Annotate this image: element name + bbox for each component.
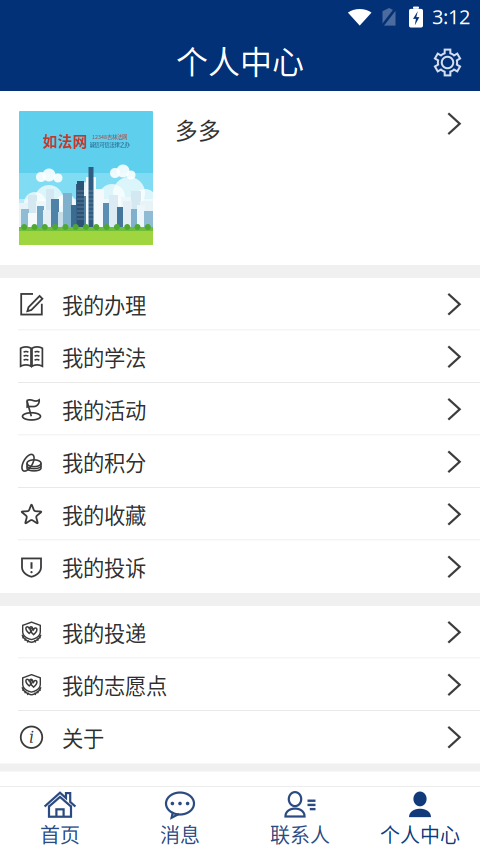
staticText: 我的收藏 [62,499,146,530]
staticText: 我的办理 [62,289,146,320]
staticText: 3:12 [432,3,470,30]
staticText: 我的学法 [62,341,146,372]
staticText: 多多 [175,113,221,146]
staticText: i [29,728,34,746]
staticText: 关于 [62,722,104,753]
button[interactable]: 首页 [0,786,120,853]
button[interactable]: Settings [419,34,476,91]
staticText: 我的活动 [62,394,146,425]
staticText: 个人中心 [176,37,304,83]
button[interactable]: 我的活动 [0,383,480,435]
button[interactable]: 我的志愿点 [0,658,480,711]
staticText: 如法网 [42,130,87,151]
staticText: 12348吉林法网 [92,133,127,141]
button[interactable]: 我的积分 [0,435,480,488]
button[interactable]: i [0,711,480,763]
staticText: 我的积分 [62,446,146,477]
button[interactable]: 消息 [120,786,240,853]
staticText: 联系人 [270,819,330,848]
button[interactable]: 我的办理 [0,278,480,330]
staticText: 消息 [160,819,200,848]
button[interactable]: 个人中心 [360,786,480,853]
button[interactable]: 我的投递 [0,606,480,658]
button[interactable]: 如法网 [0,91,480,265]
button[interactable]: 我的学法 [0,330,480,383]
button[interactable]: 我的投诉 [0,540,480,593]
staticText: 诚信可信法律之办 [89,141,129,148]
staticText: 我的志愿点 [62,669,167,700]
staticText: 首页 [40,819,80,848]
staticText: 个人中心 [380,819,460,848]
staticText: 我的投诉 [62,551,146,582]
button[interactable]: 联系人 [240,786,360,853]
staticText: 我的投递 [62,617,146,648]
button[interactable]: 我的收藏 [0,488,480,540]
